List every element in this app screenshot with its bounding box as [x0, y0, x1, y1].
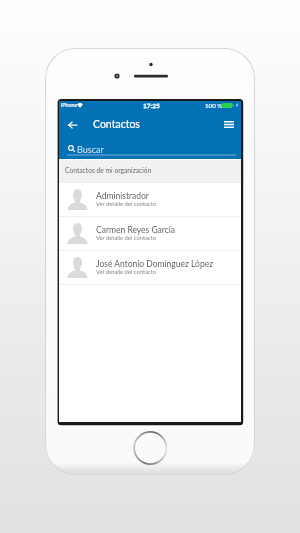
staticText: 17:25: [143, 102, 160, 110]
staticText: Contactos de mi organización: [65, 166, 152, 174]
button[interactable]: Back: [60, 114, 84, 136]
button[interactable]: Administrador: [59, 182, 241, 216]
staticText: Ver detalle del contacto: [96, 200, 156, 207]
staticText: Administrador: [96, 191, 149, 201]
staticText: José Antonio Domínguez López: [96, 259, 213, 269]
button[interactable]: Menu: [217, 113, 241, 135]
staticText: Carmen Reyes García: [96, 225, 176, 235]
staticText: iPhone: [61, 102, 78, 108]
button[interactable]: José Antonio Domínguez López: [59, 250, 241, 284]
staticText: Contactos: [93, 118, 140, 131]
button[interactable]: Carmen Reyes García: [59, 216, 241, 250]
staticText: 100 %: [205, 102, 223, 109]
button[interactable]: Buscar: [64, 142, 236, 157]
staticText: Ver detalle del contacto: [96, 268, 156, 275]
staticText: Ver detalle del contacto: [96, 234, 156, 241]
staticText: Buscar: [77, 144, 104, 155]
